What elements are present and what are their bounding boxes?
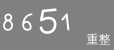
button[interactable]: Verification code image, tap to refresh — [0, 0, 114, 50]
button[interactable]: 重整 — [85, 33, 112, 46]
staticText: 重整 — [86, 32, 110, 47]
